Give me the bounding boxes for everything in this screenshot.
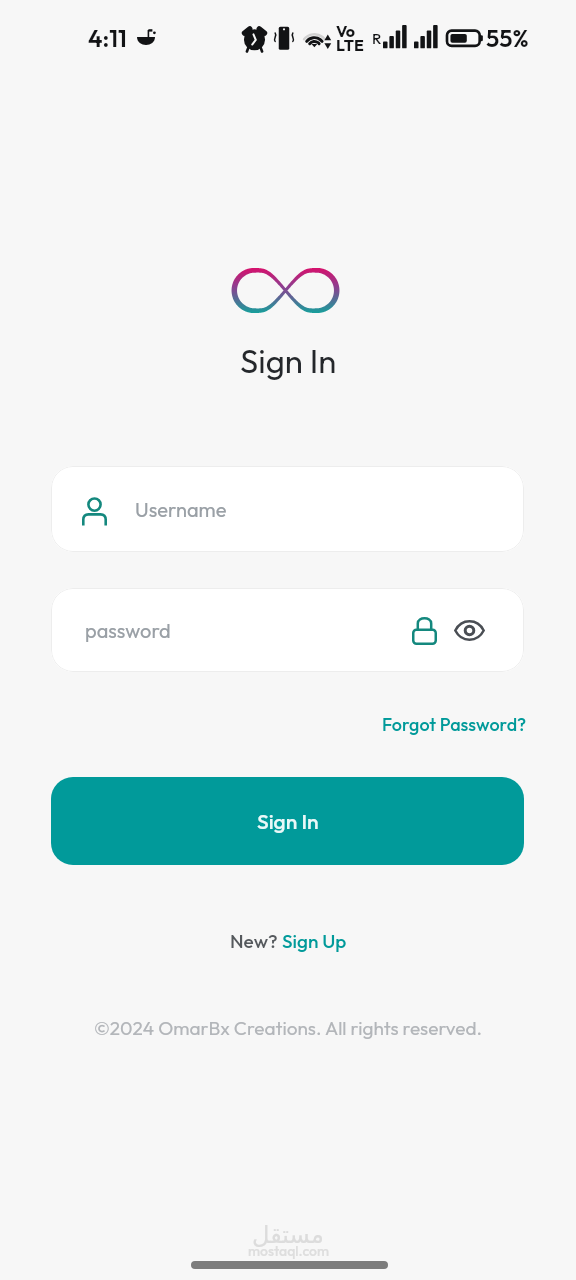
button[interactable]: Username <box>51 466 524 552</box>
staticText: Sign In <box>240 340 337 382</box>
staticText: 55% <box>486 23 529 53</box>
staticText: ©2024 OmarBx Creations. All rights reser… <box>94 1016 482 1040</box>
staticText: Forgot Password? <box>382 713 527 736</box>
button[interactable]: Show password <box>454 618 485 643</box>
staticText: LTE <box>336 35 364 55</box>
button[interactable]: Forgot Password? <box>382 713 527 736</box>
staticText: Username <box>135 497 227 522</box>
staticText: Sign In <box>257 808 319 834</box>
staticText: R <box>372 29 382 48</box>
staticText: مستقل <box>252 1221 324 1249</box>
staticText: New? <box>230 929 282 953</box>
staticText: mostaql.com <box>248 1242 329 1260</box>
button[interactable]: Sign In <box>51 777 524 865</box>
staticText: password <box>85 618 171 643</box>
staticText: 4:11 <box>88 23 127 53</box>
staticText: Sign Up <box>282 929 347 953</box>
button[interactable]: password <box>51 588 524 672</box>
button[interactable]: Sign Up <box>282 929 347 953</box>
staticText: Vo <box>336 21 355 41</box>
other: Password <box>412 616 437 645</box>
